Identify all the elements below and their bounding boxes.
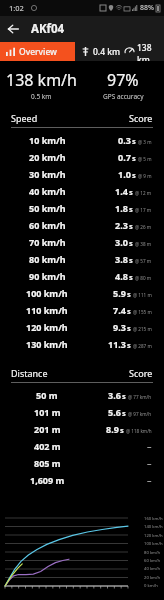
staticText: Overview — [19, 46, 57, 58]
staticText: 201 m — [34, 423, 61, 435]
staticText: @ 77 km/h — [128, 394, 152, 400]
button[interactable]: Back — [0, 16, 26, 42]
staticText: s — [129, 255, 133, 265]
staticText: 80 km/h — [29, 253, 66, 265]
staticText: @ 26 m — [135, 224, 152, 230]
button[interactable]: 110 km/h — [0, 301, 164, 318]
staticText: @ 111 m — [133, 292, 152, 298]
staticText: s — [122, 391, 126, 401]
button[interactable]: 1,609 m — [0, 471, 164, 488]
button[interactable]: 120 km/h — [0, 318, 164, 335]
staticText: 30 km/h — [29, 168, 66, 180]
staticText: 0 km/h — [144, 583, 158, 589]
staticText: @ 57 m — [135, 258, 152, 264]
staticText: 88% — [140, 3, 154, 13]
staticText: 50 m — [36, 389, 58, 401]
staticText: s — [127, 323, 131, 333]
button[interactable]: Overview — [0, 42, 75, 61]
staticText: 60 km/h — [144, 558, 161, 564]
button[interactable]: 101 m — [0, 403, 164, 420]
button[interactable]: 402 m — [0, 437, 164, 454]
staticText: 9.3 — [113, 321, 126, 333]
staticText: 120 km/h — [26, 321, 68, 333]
staticText: 90 km/h — [29, 270, 66, 282]
staticText: 120 km/h — [144, 533, 163, 539]
staticText: 8.9 — [106, 423, 119, 435]
staticText: s — [129, 221, 133, 231]
staticText: 0.7 — [118, 151, 131, 163]
staticText: GPS accuracy — [103, 92, 144, 101]
staticText: @ 155 m — [133, 309, 152, 315]
staticText: s — [132, 170, 136, 180]
staticText: AKf04 — [31, 21, 65, 37]
staticText: 20 km/h — [144, 575, 161, 581]
staticText: 40 km/h — [29, 185, 66, 197]
staticText: s — [120, 425, 124, 435]
staticText: @ 17 m — [135, 207, 152, 213]
staticText: 138 km/h — [6, 69, 77, 91]
staticText: 20 km/h — [29, 151, 66, 163]
staticText: @ 9 m — [138, 173, 152, 179]
staticText: @ 118 km/h — [126, 428, 152, 434]
staticText: s — [129, 187, 133, 197]
staticText: – — [147, 457, 152, 469]
staticText: 138 km — [137, 42, 164, 61]
staticText: 160 km/h — [144, 516, 163, 522]
staticText: 7.4 — [113, 304, 126, 316]
button[interactable]: 130 km/h — [0, 335, 164, 352]
staticText: 80 km/h — [144, 550, 161, 556]
staticText: 3.6 — [108, 389, 121, 401]
button[interactable]: 70 km/h — [0, 233, 164, 250]
staticText: 110 km/h — [26, 304, 68, 316]
staticText: s — [129, 272, 133, 282]
staticText: 5.6 — [108, 406, 121, 418]
staticText: 11.3 — [108, 338, 126, 350]
staticText: 1.8 — [115, 202, 128, 214]
staticText: s — [129, 204, 133, 214]
staticText: 805 m — [34, 457, 61, 469]
staticText: s — [129, 238, 133, 248]
staticText: 0.4 km — [93, 46, 121, 58]
staticText: @ 97 km/h — [128, 411, 152, 417]
button[interactable]: 805 m — [0, 454, 164, 471]
staticText: Speed — [11, 112, 38, 124]
staticText: 0.3 — [118, 134, 131, 146]
button[interactable]: 0.4 km — [75, 42, 164, 61]
staticText: 97% — [107, 69, 139, 91]
staticText: Distance — [11, 367, 48, 379]
button[interactable]: 30 km/h — [0, 165, 164, 182]
staticText: @ 80 m — [135, 275, 152, 281]
staticText: 3.0 — [115, 236, 128, 248]
button[interactable]: 10 km/h — [0, 131, 164, 148]
button[interactable]: 100 km/h — [0, 284, 164, 301]
staticText: 101 m — [34, 406, 61, 418]
staticText: s — [127, 289, 131, 299]
staticText: 70 km/h — [29, 236, 66, 248]
staticText: s — [132, 136, 136, 146]
button[interactable]: 80 km/h — [0, 250, 164, 267]
staticText: 1:02 — [9, 3, 24, 13]
staticText: 10 km/h — [29, 134, 66, 146]
button[interactable]: 50 m — [0, 386, 164, 403]
button[interactable]: 40 km/h — [0, 182, 164, 199]
button[interactable]: 201 m — [0, 420, 164, 437]
button[interactable]: 90 km/h — [0, 267, 164, 284]
staticText: 100 km/h — [144, 541, 163, 547]
staticText: @ 215 m — [133, 326, 152, 332]
staticText: 1.0 — [118, 168, 131, 180]
staticText: – — [147, 474, 152, 486]
staticText: @ 3 m — [138, 139, 152, 145]
staticText: 40 km/h — [144, 566, 161, 572]
staticText: 1.4 — [115, 185, 128, 197]
button[interactable]: 20 km/h — [0, 148, 164, 165]
staticText: @ 12 m — [135, 190, 152, 196]
staticText: 50 km/h — [29, 202, 66, 214]
staticText: 60 km/h — [29, 219, 66, 231]
staticText: 4.8 — [115, 270, 128, 282]
staticText: @ 5 m — [138, 156, 152, 162]
button[interactable]: 60 km/h — [0, 216, 164, 233]
staticText: – — [147, 440, 152, 452]
staticText: 0.5 km — [31, 92, 52, 101]
button[interactable]: 50 km/h — [0, 199, 164, 216]
staticText: 3.8 — [115, 253, 128, 265]
